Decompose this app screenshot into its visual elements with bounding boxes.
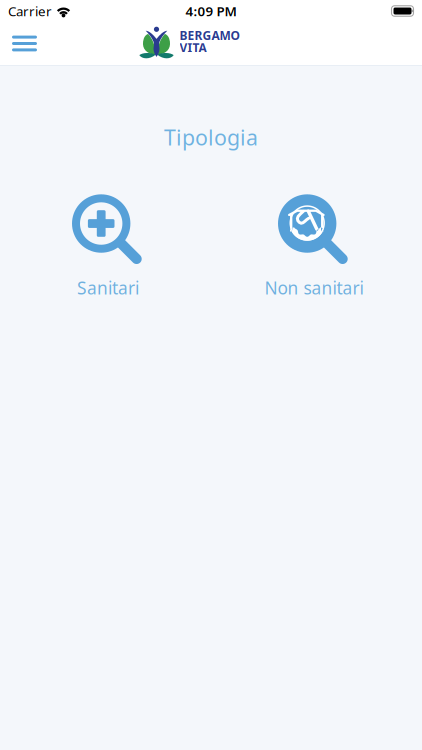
button[interactable]: Non sanitari bbox=[211, 194, 417, 299]
staticText: Sanitari bbox=[77, 276, 139, 299]
staticText: BERGAMO bbox=[179, 27, 239, 43]
staticText: Non sanitari bbox=[264, 276, 363, 299]
staticText: Tipologia bbox=[164, 123, 258, 151]
staticText: 4:09 PM bbox=[185, 2, 236, 20]
button[interactable]: Menu bbox=[0, 24, 51, 62]
button[interactable]: Sanitari bbox=[5, 194, 211, 299]
staticText: VITA bbox=[179, 40, 206, 56]
staticText: Carrier bbox=[8, 2, 52, 20]
